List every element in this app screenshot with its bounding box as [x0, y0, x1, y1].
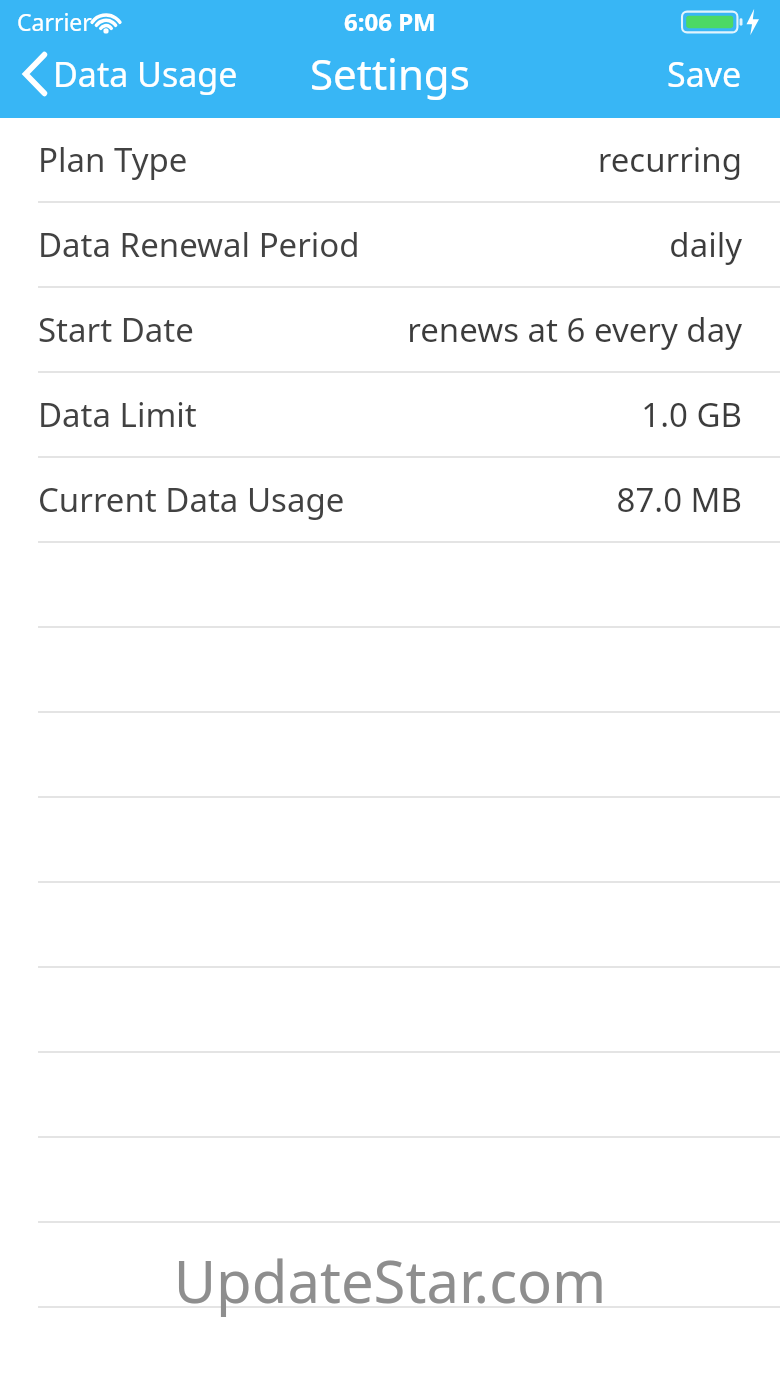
staticText: Current Data Usage: [38, 477, 345, 522]
staticText: renews at 6 every day: [407, 307, 742, 352]
staticText: Data Limit: [38, 392, 197, 437]
button[interactable]: Save: [629, 38, 780, 110]
staticText: daily: [669, 222, 742, 267]
staticText: Data Usage: [53, 51, 238, 97]
button[interactable]: Start Date: [0, 288, 780, 371]
button[interactable]: Current Data Usage: [0, 458, 780, 541]
staticText: Carrier: [17, 6, 92, 37]
staticText: Save: [667, 51, 742, 97]
button[interactable]: Data Limit: [0, 373, 780, 456]
staticText: Start Date: [38, 307, 194, 352]
button[interactable]: Plan Type: [0, 118, 780, 201]
staticText: Data Renewal Period: [38, 222, 360, 267]
staticText: Settings: [310, 45, 470, 102]
staticText: Plan Type: [38, 137, 188, 182]
staticText: 87.0 MB: [616, 477, 742, 522]
staticText: 1.0 GB: [641, 392, 742, 437]
button[interactable]: Data Renewal Period: [0, 203, 780, 286]
staticText: 6:06 PM: [344, 5, 436, 38]
button[interactable]: Data Usage: [0, 38, 248, 110]
staticText: UpdateStar.com: [0, 1241, 780, 1320]
staticText: recurring: [597, 137, 742, 182]
